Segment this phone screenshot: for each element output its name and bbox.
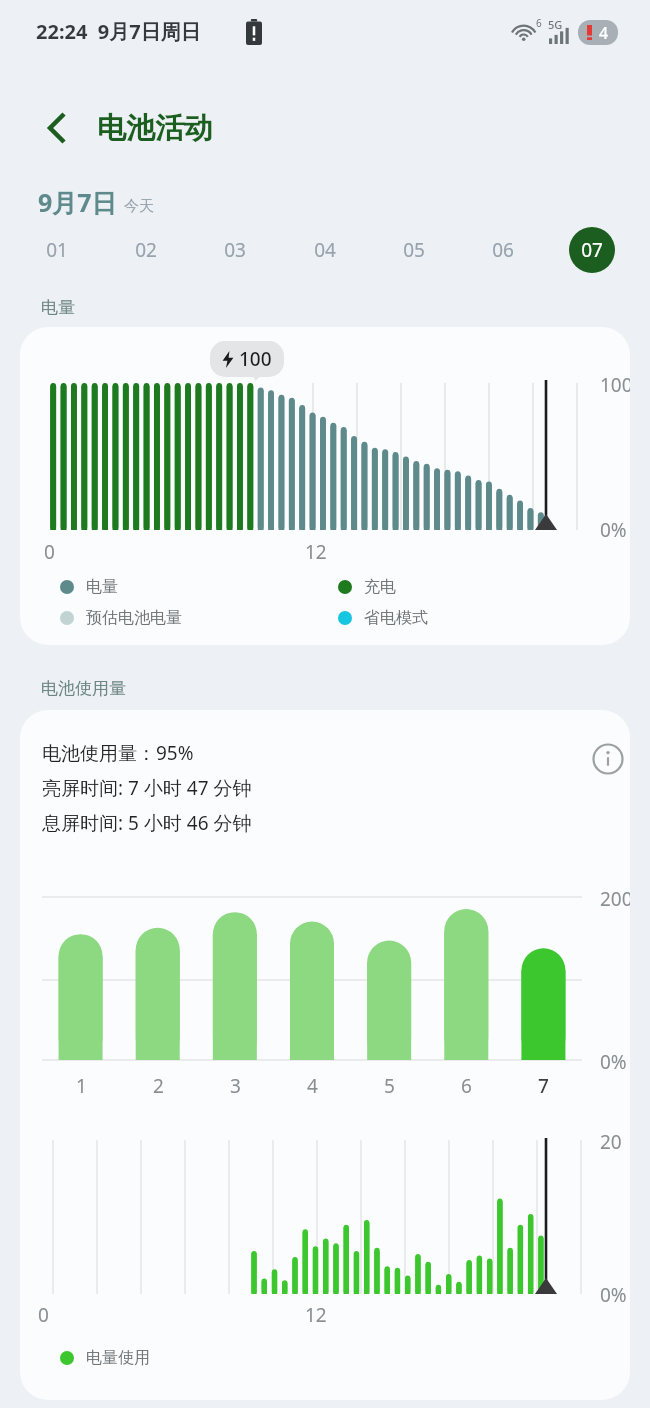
staticText: 0%: [600, 1282, 627, 1308]
staticText: 省电模式: [364, 608, 428, 628]
staticText: 02: [135, 237, 157, 263]
staticText: 0%: [600, 1049, 627, 1075]
staticText: 电量使用: [86, 1348, 150, 1368]
staticText: 12: [305, 539, 327, 565]
staticText: 04: [314, 237, 336, 263]
button[interactable]: 省电模式: [338, 608, 428, 628]
staticText: 电量: [86, 577, 118, 597]
staticText: 5: [384, 1073, 395, 1099]
staticText: 06: [492, 237, 514, 263]
staticText: 9月7日: [38, 185, 117, 219]
staticText: 20: [600, 1129, 622, 1155]
staticText: 6: [536, 16, 542, 30]
staticText: 电池使用量：95%: [42, 740, 194, 766]
staticText: 6: [461, 1073, 472, 1099]
staticText: 7: [538, 1073, 549, 1099]
staticText: 07: [581, 237, 603, 263]
staticText: 0%: [600, 517, 627, 543]
staticText: 100: [239, 346, 272, 372]
staticText: 03: [224, 237, 246, 263]
staticText: 3: [230, 1073, 241, 1099]
button[interactable]: 01: [31, 224, 83, 276]
staticText: 充电: [364, 577, 396, 597]
staticText: 22:24 9月7日周日: [36, 18, 201, 45]
button[interactable]: Back: [30, 100, 82, 156]
staticText: 4: [599, 22, 609, 44]
staticText: 息屏时间: 5 小时 46 分钟: [42, 810, 252, 836]
button[interactable]: 07: [566, 224, 618, 276]
staticText: 电量: [41, 297, 75, 318]
staticText: 100: [600, 372, 630, 398]
staticText: 1: [76, 1073, 87, 1099]
button[interactable]: 电量使用: [60, 1348, 150, 1368]
button[interactable]: 02: [120, 224, 172, 276]
button[interactable]: 充电: [338, 577, 396, 597]
button[interactable]: 100: [20, 327, 630, 645]
staticText: 电池活动: [97, 110, 213, 147]
button[interactable]: 电池使用量：95%: [20, 710, 630, 1400]
staticText: 电池使用量: [41, 678, 126, 699]
staticText: 亮屏时间: 7 小时 47 分钟: [42, 775, 252, 801]
staticText: 2: [153, 1073, 164, 1099]
button[interactable]: Info: [572, 724, 630, 794]
staticText: 5G: [548, 17, 563, 32]
button[interactable]: 03: [209, 224, 261, 276]
button[interactable]: 04: [299, 224, 351, 276]
staticText: 0: [38, 1302, 49, 1328]
staticText: 今天: [124, 197, 154, 216]
staticText: 12: [305, 1302, 327, 1328]
button[interactable]: 05: [388, 224, 440, 276]
staticText: 4: [307, 1073, 318, 1099]
staticText: 05: [403, 237, 425, 263]
button[interactable]: 06: [477, 224, 529, 276]
button[interactable]: 预估电池电量: [60, 608, 182, 628]
button[interactable]: 电量: [60, 577, 118, 597]
staticText: 200: [600, 886, 630, 912]
staticText: 0: [44, 539, 55, 565]
staticText: 预估电池电量: [86, 608, 182, 628]
staticText: 01: [46, 237, 68, 263]
